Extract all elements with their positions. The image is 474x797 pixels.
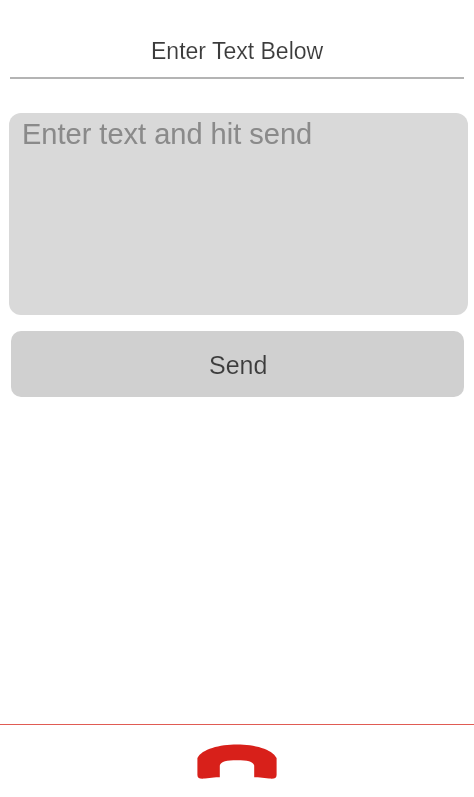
staticText: Enter Text Below — [151, 38, 324, 64]
button[interactable]: Send — [11, 331, 464, 397]
staticText: Send — [209, 351, 268, 379]
button[interactable]: Enter text and hit send — [9, 113, 468, 315]
staticText: Enter text and hit send — [22, 118, 313, 150]
button[interactable]: End call — [191, 740, 283, 784]
